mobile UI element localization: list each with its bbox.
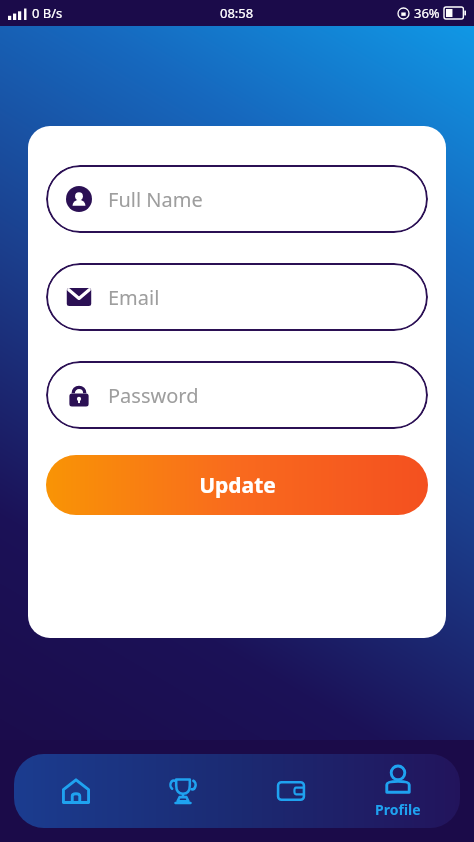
staticText: Password — [108, 382, 199, 409]
staticText: 36% — [414, 4, 440, 22]
button[interactable]: Rewards — [137, 754, 229, 828]
button[interactable]: Email — [46, 263, 428, 331]
button[interactable]: Password — [46, 361, 428, 429]
staticText: 08:58 — [220, 4, 254, 22]
button[interactable]: Update — [46, 455, 428, 515]
staticText: Update — [199, 471, 276, 500]
staticText: Email — [108, 284, 160, 311]
staticText: Profile — [375, 800, 421, 819]
button[interactable]: Home — [30, 754, 122, 828]
staticText: Full Name — [108, 186, 203, 213]
button[interactable]: Wallet — [245, 754, 337, 828]
staticText: 0 B/s — [32, 4, 63, 22]
button[interactable]: Full Name — [46, 165, 428, 233]
button[interactable]: Profile — [352, 754, 444, 828]
